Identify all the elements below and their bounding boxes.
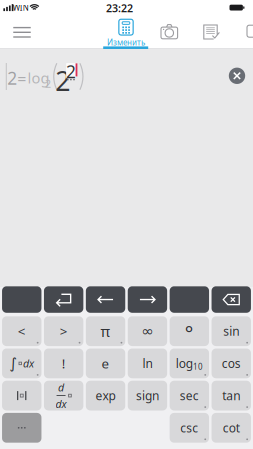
staticText: exp	[95, 388, 115, 403]
staticText: log	[176, 355, 193, 371]
button[interactable]: Move right	[128, 286, 167, 313]
staticText: sin	[223, 323, 239, 339]
button[interactable]: Blank key	[170, 286, 209, 313]
staticText: 23:22	[106, 1, 133, 15]
button[interactable]: ∫	[2, 348, 41, 378]
staticText: sign	[136, 388, 159, 403]
staticText: dx	[23, 356, 34, 370]
button[interactable]: Delete	[212, 286, 251, 313]
staticText: cos	[222, 355, 241, 371]
staticText: sec	[180, 388, 199, 403]
staticText: >	[60, 322, 68, 340]
staticText: ∞	[141, 323, 153, 339]
staticText: Изменить	[107, 37, 145, 48]
button[interactable]: Clear	[229, 68, 245, 84]
staticText: 2	[7, 66, 17, 89]
button[interactable]: e	[86, 348, 125, 378]
button[interactable]: Bookmarks	[247, 25, 253, 37]
staticText: d	[58, 380, 64, 394]
staticText: csc	[180, 420, 198, 436]
staticText: ln	[142, 355, 152, 371]
button[interactable]: ∞	[128, 316, 167, 346]
button[interactable]: csc	[170, 413, 209, 443]
staticText: tan	[222, 388, 240, 403]
button[interactable]: ln	[128, 348, 167, 378]
button[interactable]: cos	[212, 348, 251, 378]
staticText: ∫	[9, 355, 17, 372]
staticText: 2	[55, 63, 70, 98]
button[interactable]: sec	[170, 381, 209, 410]
staticText: =	[17, 68, 26, 89]
staticText: log	[27, 68, 49, 88]
staticText: °	[185, 320, 194, 346]
button[interactable]: >	[44, 316, 83, 346]
button[interactable]: cot	[212, 413, 251, 443]
button[interactable]: Camera	[161, 25, 178, 39]
button[interactable]: sign	[128, 381, 167, 410]
staticText: dx	[55, 397, 66, 411]
button[interactable]: Blank key	[2, 286, 41, 313]
button[interactable]: <	[2, 316, 41, 346]
button[interactable]: d	[44, 381, 83, 410]
button[interactable]: Menu	[9, 22, 35, 42]
button[interactable]: log	[170, 348, 209, 378]
staticText: 10	[193, 361, 203, 372]
staticText: !	[62, 354, 66, 372]
button[interactable]: Notebook	[204, 25, 217, 39]
button[interactable]: Изменить	[101, 19, 151, 48]
button[interactable]	[2, 381, 41, 410]
staticText: cot	[223, 420, 240, 436]
staticText: π	[100, 321, 110, 341]
button[interactable]: sin	[212, 316, 251, 346]
button[interactable]: °	[170, 316, 209, 346]
button[interactable]: exp	[86, 381, 125, 410]
staticText: WIN	[13, 2, 29, 13]
button[interactable]: Move left	[86, 286, 125, 313]
staticText: <	[18, 322, 26, 340]
button[interactable]: π	[86, 316, 125, 346]
button[interactable]: tan	[212, 381, 251, 410]
staticText: 2	[66, 60, 76, 83]
button[interactable]: !	[44, 348, 83, 378]
staticText: 2	[45, 76, 51, 91]
button[interactable]: Enter	[44, 286, 83, 313]
button[interactable]: More	[2, 413, 41, 443]
staticText: e	[101, 354, 109, 372]
